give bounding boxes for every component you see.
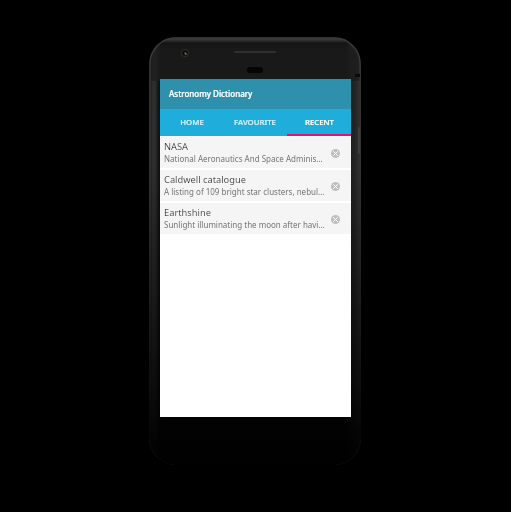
- button[interactable]: Caldwell catalogue: [160, 170, 351, 201]
- staticText: RECENT: [305, 117, 334, 128]
- button[interactable]: FAVOURITE: [223, 109, 287, 136]
- staticText: Earthshine: [164, 206, 211, 219]
- button[interactable]: Remove from recent: [325, 206, 351, 232]
- staticText: National Aeronautics And Space Adminis…: [164, 153, 323, 164]
- staticText: HOME: [180, 117, 204, 128]
- staticText: FAVOURITE: [234, 117, 276, 128]
- button[interactable]: RECENT: [287, 109, 351, 136]
- button[interactable]: Remove from recent: [325, 140, 351, 166]
- button[interactable]: HOME: [160, 109, 223, 136]
- button[interactable]: NASA: [160, 137, 351, 168]
- staticText: Sunlight illuminating the moon after hav…: [164, 219, 325, 230]
- staticText: A listing of 109 bright star clusters, n…: [164, 186, 325, 197]
- staticText: Caldwell catalogue: [164, 173, 246, 186]
- staticText: NASA: [164, 140, 189, 153]
- staticText: Astronomy Dictionary: [169, 88, 253, 99]
- button[interactable]: Earthshine: [160, 203, 351, 234]
- button[interactable]: Remove from recent: [325, 173, 351, 199]
